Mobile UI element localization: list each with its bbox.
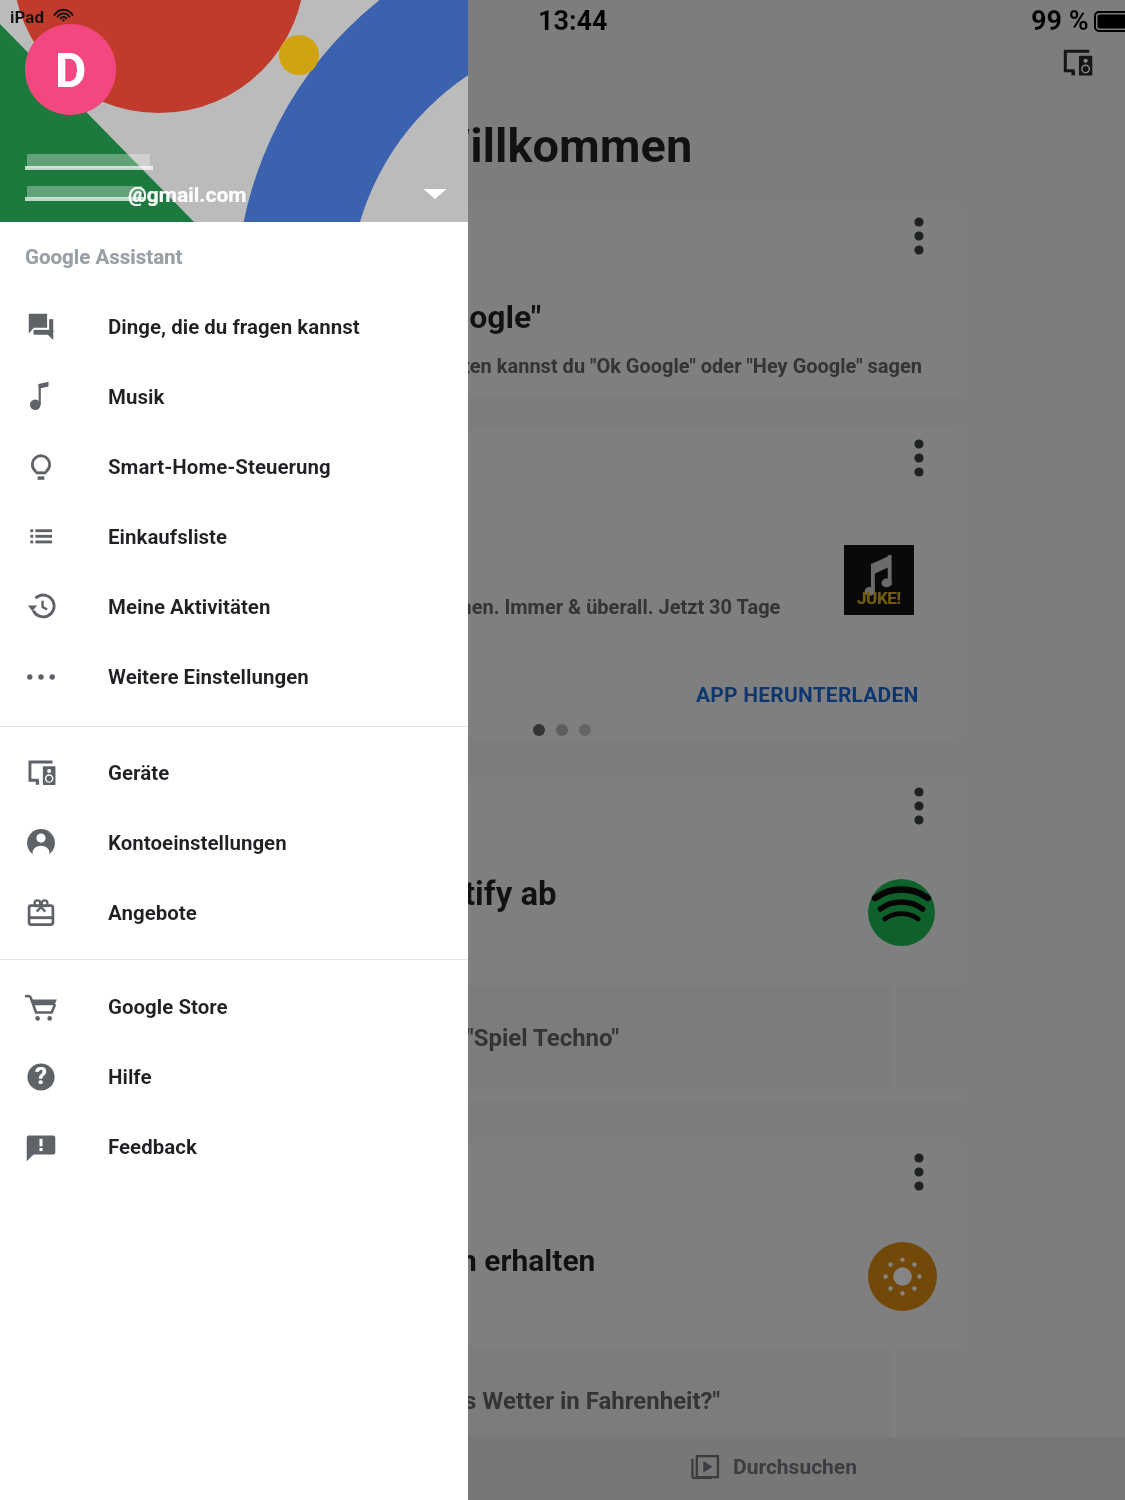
staticText: Millionen Songs streamen. Immer & überal… bbox=[375, 595, 781, 618]
button[interactable]: APP HERUNTERLADEN bbox=[692, 673, 922, 717]
button[interactable]: Google Store bbox=[24, 972, 468, 1042]
staticText: Weitere Einstellungen bbox=[108, 665, 309, 689]
staticText: Meine Aktivitäten bbox=[108, 595, 271, 619]
button[interactable]: Dinge, die du fragen kannst bbox=[24, 292, 468, 362]
staticText: Kontoeinstellungen bbox=[108, 831, 287, 855]
staticText: ? bbox=[35, 1062, 47, 1090]
staticText: Wetterinformationen erhalten bbox=[375, 1243, 596, 1278]
staticText: Feedback bbox=[108, 1135, 197, 1159]
staticText: Durchsuchen bbox=[733, 1455, 857, 1480]
staticText: Geräte bbox=[108, 761, 170, 785]
staticText: Willkommen bbox=[429, 118, 693, 173]
button[interactable]: Streamen bbox=[1059, 45, 1095, 81]
staticText: D bbox=[55, 42, 87, 98]
button[interactable]: Weitere Einstellungen bbox=[24, 642, 468, 712]
button[interactable]: ? bbox=[24, 1042, 468, 1112]
staticText: Google Assistant bbox=[25, 245, 183, 269]
staticText: Einkaufsliste bbox=[108, 525, 228, 549]
staticText: 13:44 bbox=[538, 5, 608, 37]
staticText: Smart-Home-Steuerung bbox=[108, 455, 331, 479]
staticText: iPad bbox=[10, 7, 45, 27]
staticText: Spiel Musik über Spotify ab bbox=[375, 874, 557, 913]
button[interactable]: Millionen Songs streamen. Immer & überal… bbox=[375, 429, 962, 739]
staticText: @gmail.com bbox=[128, 183, 247, 208]
button[interactable]: Durchsuchen bbox=[688, 1447, 857, 1487]
button[interactable]: Mehr Optionen bbox=[901, 1154, 937, 1190]
staticText: Dinge, die du fragen kannst bbox=[108, 315, 360, 339]
button[interactable]: Mehr Optionen bbox=[901, 218, 937, 254]
staticText: Hilfe bbox=[108, 1065, 152, 1089]
staticText: "Wie ist das Wetter in Fahrenheit?" bbox=[375, 1387, 721, 1415]
button[interactable]: "Spiel Techno" bbox=[375, 986, 891, 1089]
button[interactable]: Smart-Home-Steuerung bbox=[24, 432, 468, 502]
button[interactable]: Konto wechseln bbox=[418, 176, 452, 210]
button[interactable]: Einkaufsliste bbox=[24, 502, 468, 572]
staticText: 99 % bbox=[1031, 5, 1089, 37]
button[interactable]: Feedback bbox=[24, 1112, 468, 1182]
button[interactable]: Meine Aktivitäten bbox=[24, 572, 468, 642]
staticText: Musik bbox=[108, 385, 165, 409]
button[interactable]: Angebote bbox=[24, 878, 468, 948]
button[interactable]: Mehr Optionen bbox=[901, 788, 937, 824]
button[interactable]: Geräte bbox=[24, 738, 468, 808]
button[interactable]: Spiel Musik über Spotify ab bbox=[375, 777, 962, 1101]
staticText: APP HERUNTERLADEN bbox=[696, 683, 919, 708]
staticText: "Spiel Techno" bbox=[466, 1024, 620, 1052]
button[interactable]: Kontoeinstellungen bbox=[24, 808, 468, 878]
button[interactable]: "Ok Google" bbox=[375, 207, 962, 397]
staticText: Zum Starten kannst du "Ok Google" oder "… bbox=[380, 354, 922, 377]
button[interactable]: Musik bbox=[24, 362, 468, 432]
staticText: JUKE! bbox=[857, 588, 901, 608]
button[interactable]: Profilbild bbox=[25, 24, 116, 115]
button[interactable]: Mehr Optionen bbox=[901, 440, 937, 476]
button[interactable]: Wetterinformationen erhalten bbox=[375, 1143, 962, 1467]
staticText: Google Store bbox=[108, 995, 228, 1019]
staticText: Angebote bbox=[108, 901, 197, 925]
staticText: "Ok Google" bbox=[375, 298, 542, 336]
button[interactable]: "Wie ist das Wetter in Fahrenheit?" bbox=[375, 1349, 891, 1452]
